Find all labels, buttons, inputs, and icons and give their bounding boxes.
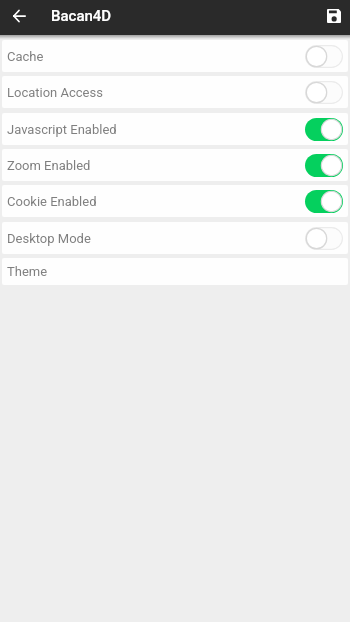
button[interactable]: Switch on	[305, 190, 343, 213]
button[interactable]: Switch on	[305, 118, 343, 141]
button[interactable]: Theme	[2, 258, 348, 285]
staticText: Javascript Enabled	[7, 122, 117, 137]
button[interactable]: Location Access	[2, 76, 348, 108]
staticText: Location Access	[7, 85, 103, 100]
staticText: Desktop Mode	[7, 231, 91, 246]
button[interactable]: Switch on	[305, 154, 343, 177]
button[interactable]: Switch off	[305, 81, 343, 104]
staticText: Zoom Enabled	[7, 158, 91, 173]
staticText: Cache	[7, 49, 44, 64]
button[interactable]: Zoom Enabled	[2, 149, 348, 181]
button[interactable]: Desktop Mode	[2, 222, 348, 254]
button[interactable]: Save	[321, 3, 347, 29]
staticText: Cookie Enabled	[7, 194, 97, 209]
button[interactable]: Javascript Enabled	[2, 113, 348, 145]
staticText: Theme	[7, 264, 48, 279]
button[interactable]: Switch off	[305, 227, 343, 250]
button[interactable]: Switch off	[305, 45, 343, 68]
button[interactable]: Cache	[2, 40, 348, 72]
button[interactable]: Cookie Enabled	[2, 185, 348, 217]
button[interactable]: Back	[6, 3, 32, 29]
staticText: Bacan4D	[51, 7, 112, 25]
